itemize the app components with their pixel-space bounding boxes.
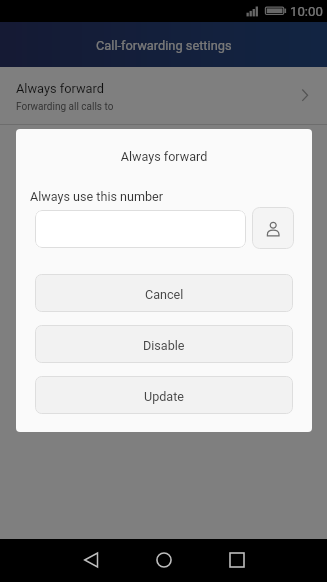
staticText: Cancel bbox=[145, 287, 184, 302]
button[interactable]: Back bbox=[67, 539, 115, 582]
button[interactable] bbox=[35, 210, 246, 248]
button[interactable]: Always forward bbox=[0, 67, 327, 124]
staticText: Forwarding all calls to bbox=[16, 101, 114, 113]
staticText: Always forward bbox=[16, 81, 104, 96]
staticText: Call-forwarding settings bbox=[96, 38, 232, 53]
button[interactable]: Home bbox=[140, 539, 188, 582]
button[interactable]: Cancel bbox=[35, 274, 293, 312]
button[interactable]: Recent apps bbox=[213, 539, 261, 582]
staticText: Always use this number bbox=[30, 189, 164, 204]
staticText: 10:00 bbox=[290, 4, 323, 19]
staticText: Disable bbox=[143, 338, 185, 353]
button[interactable]: Choose a contact bbox=[252, 207, 294, 249]
staticText: Always forward bbox=[16, 149, 312, 164]
button[interactable]: Disable bbox=[35, 325, 293, 363]
button[interactable]: Update bbox=[35, 376, 293, 414]
staticText: Update bbox=[144, 389, 184, 404]
